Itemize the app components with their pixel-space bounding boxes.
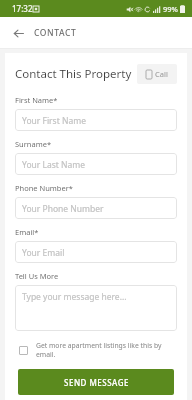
button[interactable]: Get more apartment listings like this by…: [15, 341, 177, 359]
button[interactable]: Your Phone Number: [15, 197, 177, 219]
button[interactable]: SEND MESSAGE: [18, 369, 174, 395]
staticText: 99%: [163, 4, 178, 14]
button[interactable]: Call: [137, 64, 177, 84]
staticText: Call: [155, 69, 168, 79]
button[interactable]: Your Last Name: [15, 153, 177, 175]
staticText: Phone Number*: [15, 183, 73, 193]
staticText: Contact This Property: [15, 66, 137, 82]
staticText: Tell Us More: [15, 271, 59, 281]
staticText: First Name*: [15, 95, 58, 105]
staticText: Get more apartment listings like this by…: [36, 341, 177, 359]
staticText: Email*: [15, 227, 39, 237]
staticText: SEND MESSAGE: [64, 377, 129, 388]
staticText: Your Phone Number: [22, 203, 104, 213]
button[interactable]: Your Email: [15, 241, 177, 263]
staticText: CONTACT: [34, 27, 77, 39]
button[interactable]: Your First Name: [15, 109, 177, 131]
staticText: Your First Name: [22, 115, 86, 125]
staticText: Your Last Name: [22, 159, 86, 169]
button[interactable]: Type your message here...: [15, 285, 177, 331]
staticText: Surname*: [15, 139, 52, 149]
staticText: Your Email: [22, 247, 65, 257]
staticText: 17:32: [12, 3, 33, 14]
button[interactable]: Back: [8, 23, 28, 43]
staticText: Type your message here...: [22, 291, 127, 303]
